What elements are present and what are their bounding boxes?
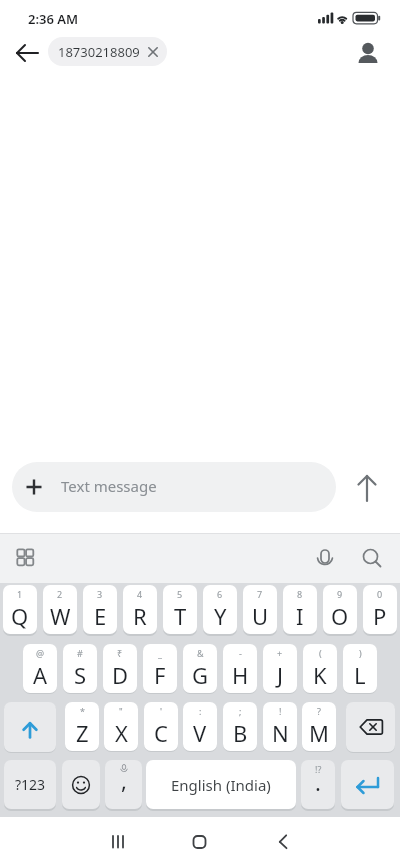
- staticText: Z: [76, 718, 89, 748]
- staticText: ): [359, 647, 362, 659]
- button[interactable]: +: [263, 644, 297, 693]
- staticText: !?: [315, 763, 322, 775]
- staticText: 6: [217, 588, 223, 600]
- button[interactable]: 0: [363, 585, 397, 634]
- staticText: H: [232, 660, 249, 690]
- staticText: V: [193, 718, 207, 748]
- staticText: 9: [337, 588, 343, 600]
- button[interactable]: 2: [43, 585, 77, 634]
- button[interactable]: [346, 702, 395, 752]
- button[interactable]: 4: [123, 585, 157, 634]
- button[interactable]: Text message: [12, 462, 336, 512]
- button[interactable]: [8, 36, 48, 76]
- button[interactable]: ": [104, 702, 138, 751]
- button[interactable]: ?123: [4, 760, 56, 809]
- staticText: M: [309, 718, 329, 748]
- staticText: #: [77, 647, 83, 659]
- staticText: 4: [137, 588, 143, 600]
- button[interactable]: 7: [243, 585, 277, 634]
- button[interactable]: [341, 760, 394, 809]
- staticText: P: [373, 601, 387, 631]
- button[interactable]: [348, 470, 386, 508]
- staticText: 3: [97, 588, 103, 600]
- staticText: F: [154, 660, 166, 690]
- button[interactable]: ): [343, 644, 377, 693]
- staticText: N: [272, 718, 289, 748]
- staticText: 8: [297, 588, 303, 600]
- staticText: Y: [214, 601, 227, 631]
- button[interactable]: ₹: [103, 644, 137, 693]
- staticText: *: [80, 705, 85, 717]
- staticText: Q: [11, 601, 29, 631]
- staticText: ?123: [15, 775, 46, 794]
- staticText: G: [192, 660, 209, 690]
- button[interactable]: 5: [163, 585, 197, 634]
- staticText: English (India): [171, 775, 271, 795]
- button[interactable]: 8: [283, 585, 317, 634]
- staticText: !: [279, 705, 282, 717]
- staticText: _: [158, 647, 162, 659]
- staticText: Text message: [61, 476, 157, 496]
- staticText: :: [199, 705, 202, 717]
- staticText: ;: [239, 705, 242, 717]
- button[interactable]: [266, 825, 300, 859]
- staticText: R: [133, 601, 147, 631]
- button[interactable]: #: [63, 644, 97, 693]
- staticText: C: [154, 718, 168, 748]
- button[interactable]: [310, 546, 340, 576]
- staticText: 0: [377, 588, 383, 600]
- staticText: U: [252, 601, 269, 631]
- staticText: @: [36, 647, 45, 659]
- staticText: 5: [177, 588, 183, 600]
- button[interactable]: ,: [105, 760, 142, 809]
- button[interactable]: [100, 825, 138, 859]
- staticText: .: [315, 767, 321, 797]
- button[interactable]: 1: [3, 585, 37, 634]
- button[interactable]: 3: [83, 585, 117, 634]
- staticText: +: [277, 647, 283, 659]
- staticText: 7: [257, 588, 263, 600]
- staticText: 2: [57, 588, 63, 600]
- staticText: W: [50, 601, 71, 631]
- staticText: S: [74, 660, 87, 690]
- button[interactable]: &: [183, 644, 217, 693]
- staticText: 1: [17, 588, 23, 600]
- staticText: O: [331, 601, 349, 631]
- button[interactable]: ': [144, 702, 178, 751]
- staticText: I: [296, 601, 304, 631]
- button[interactable]: 18730218809: [48, 37, 167, 66]
- button[interactable]: !?: [301, 760, 335, 809]
- button[interactable]: [10, 543, 40, 573]
- button[interactable]: (: [303, 644, 337, 693]
- staticText: 2:36 AM: [28, 10, 79, 28]
- button[interactable]: @: [23, 644, 57, 693]
- button[interactable]: 6: [203, 585, 237, 634]
- staticText: 18730218809: [58, 43, 140, 61]
- button[interactable]: 9: [323, 585, 357, 634]
- staticText: B: [233, 718, 248, 748]
- staticText: (: [319, 647, 322, 659]
- staticText: D: [112, 660, 129, 690]
- staticText: T: [174, 601, 187, 631]
- staticText: ': [160, 705, 163, 717]
- button[interactable]: ;: [223, 702, 257, 751]
- button[interactable]: [4, 702, 56, 752]
- button[interactable]: !: [263, 702, 297, 751]
- button[interactable]: :: [183, 702, 217, 751]
- button[interactable]: [356, 546, 386, 576]
- staticText: ": [119, 705, 123, 717]
- button[interactable]: ?: [302, 702, 336, 751]
- staticText: ₹: [117, 647, 123, 659]
- button[interactable]: _: [143, 644, 177, 693]
- staticText: X: [115, 718, 128, 748]
- button[interactable]: [62, 760, 100, 809]
- staticText: E: [94, 601, 107, 631]
- button[interactable]: English (India): [146, 760, 296, 809]
- button[interactable]: [352, 36, 386, 70]
- staticText: ,: [121, 765, 127, 795]
- button[interactable]: -: [223, 644, 257, 693]
- button[interactable]: *: [65, 702, 99, 751]
- staticText: -: [239, 647, 242, 659]
- staticText: J: [277, 660, 284, 690]
- button[interactable]: [183, 825, 217, 859]
